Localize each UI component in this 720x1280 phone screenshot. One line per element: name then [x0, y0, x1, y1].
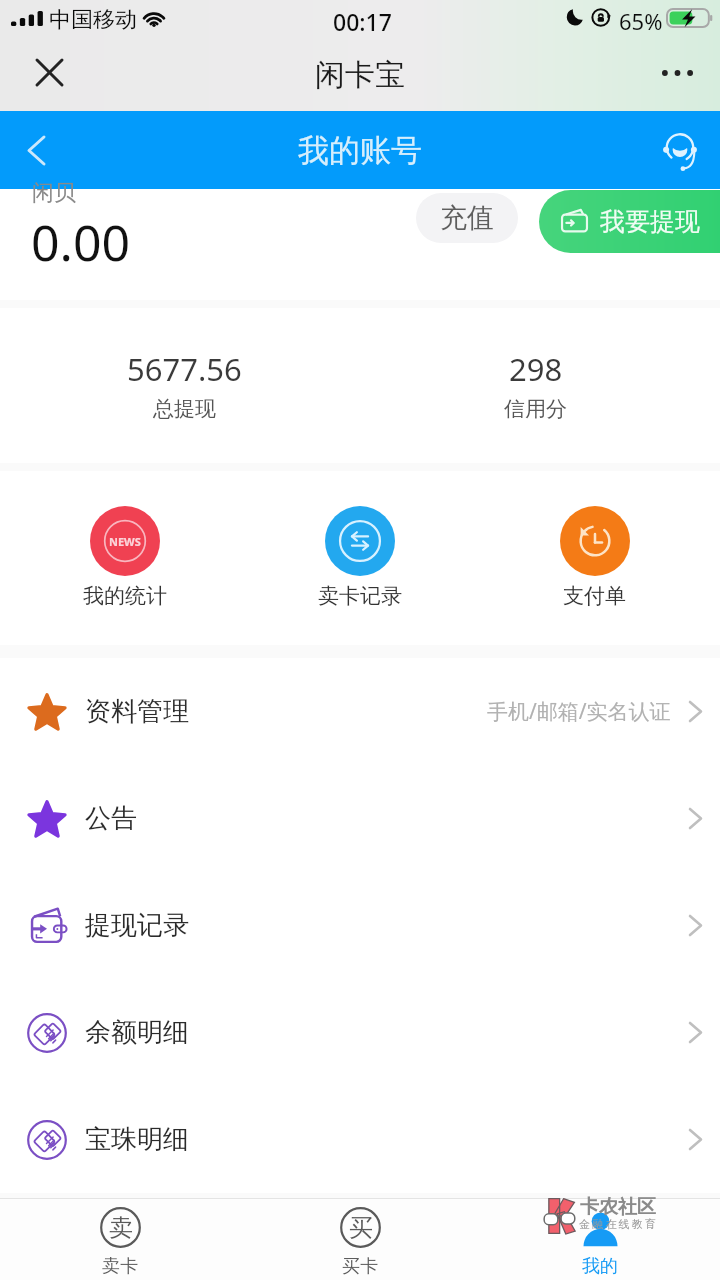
staticText: 宝珠明细	[85, 1123, 189, 1156]
staticText: 我的统计	[83, 583, 167, 609]
staticText: 298	[509, 348, 563, 390]
staticText: 资料管理	[85, 695, 189, 728]
button[interactable]: 提现记录	[0, 872, 720, 979]
staticText: 手机/邮箱/实名认证	[487, 697, 671, 726]
staticText: 卖卡记录	[318, 583, 402, 609]
staticText: 提现记录	[85, 909, 189, 942]
button[interactable]: 资料管理	[0, 658, 720, 765]
staticText: 卡农社区	[580, 1195, 656, 1219]
button[interactable]: 卖	[0, 1199, 240, 1280]
staticText: 00:17	[333, 6, 392, 37]
button[interactable]: 买	[240, 1199, 480, 1280]
button[interactable]: 我的	[480, 1199, 720, 1280]
button[interactable]: 我要提现	[539, 190, 720, 253]
button[interactable]: 公告	[0, 765, 720, 872]
button[interactable]: More options	[653, 49, 701, 97]
staticText: 买	[349, 1213, 373, 1243]
staticText: 中国移动	[49, 6, 137, 34]
button[interactable]: 充值	[416, 193, 518, 243]
button[interactable]: Customer service	[654, 124, 706, 176]
staticText: 充值	[440, 201, 494, 235]
staticText: NEWS	[109, 534, 141, 549]
button[interactable]: 宝珠明细	[0, 1086, 720, 1193]
staticText: 闲贝	[32, 179, 76, 207]
staticText: 5677.56	[127, 348, 242, 390]
button[interactable]: NEWS	[8, 506, 242, 609]
staticText: 闲卡宝	[315, 56, 405, 94]
staticText: 卖	[109, 1213, 133, 1243]
staticText: 公告	[85, 802, 137, 835]
staticText: 支付单	[563, 583, 626, 609]
button[interactable]: 298	[360, 308, 711, 422]
staticText: 信用分	[504, 396, 567, 422]
button[interactable]: 卖卡记录	[242, 506, 477, 609]
staticText: 我的	[582, 1255, 618, 1278]
staticText: 买卡	[342, 1255, 378, 1278]
button[interactable]: Back	[10, 124, 62, 176]
staticText: 金融在线教育	[579, 1217, 659, 1231]
staticText: 余额明细	[85, 1016, 189, 1049]
button[interactable]: 余额明细	[0, 979, 720, 1086]
staticText: 卖卡	[102, 1255, 138, 1278]
staticText: 65%	[619, 6, 663, 36]
staticText: 我的账号	[298, 131, 422, 170]
staticText: 我要提现	[600, 206, 700, 237]
staticText: 总提现	[153, 396, 216, 422]
button[interactable]: Close	[25, 48, 73, 96]
button[interactable]: 5677.56	[9, 308, 360, 422]
button[interactable]: 支付单	[477, 506, 712, 609]
staticText: 0.00	[31, 208, 131, 276]
